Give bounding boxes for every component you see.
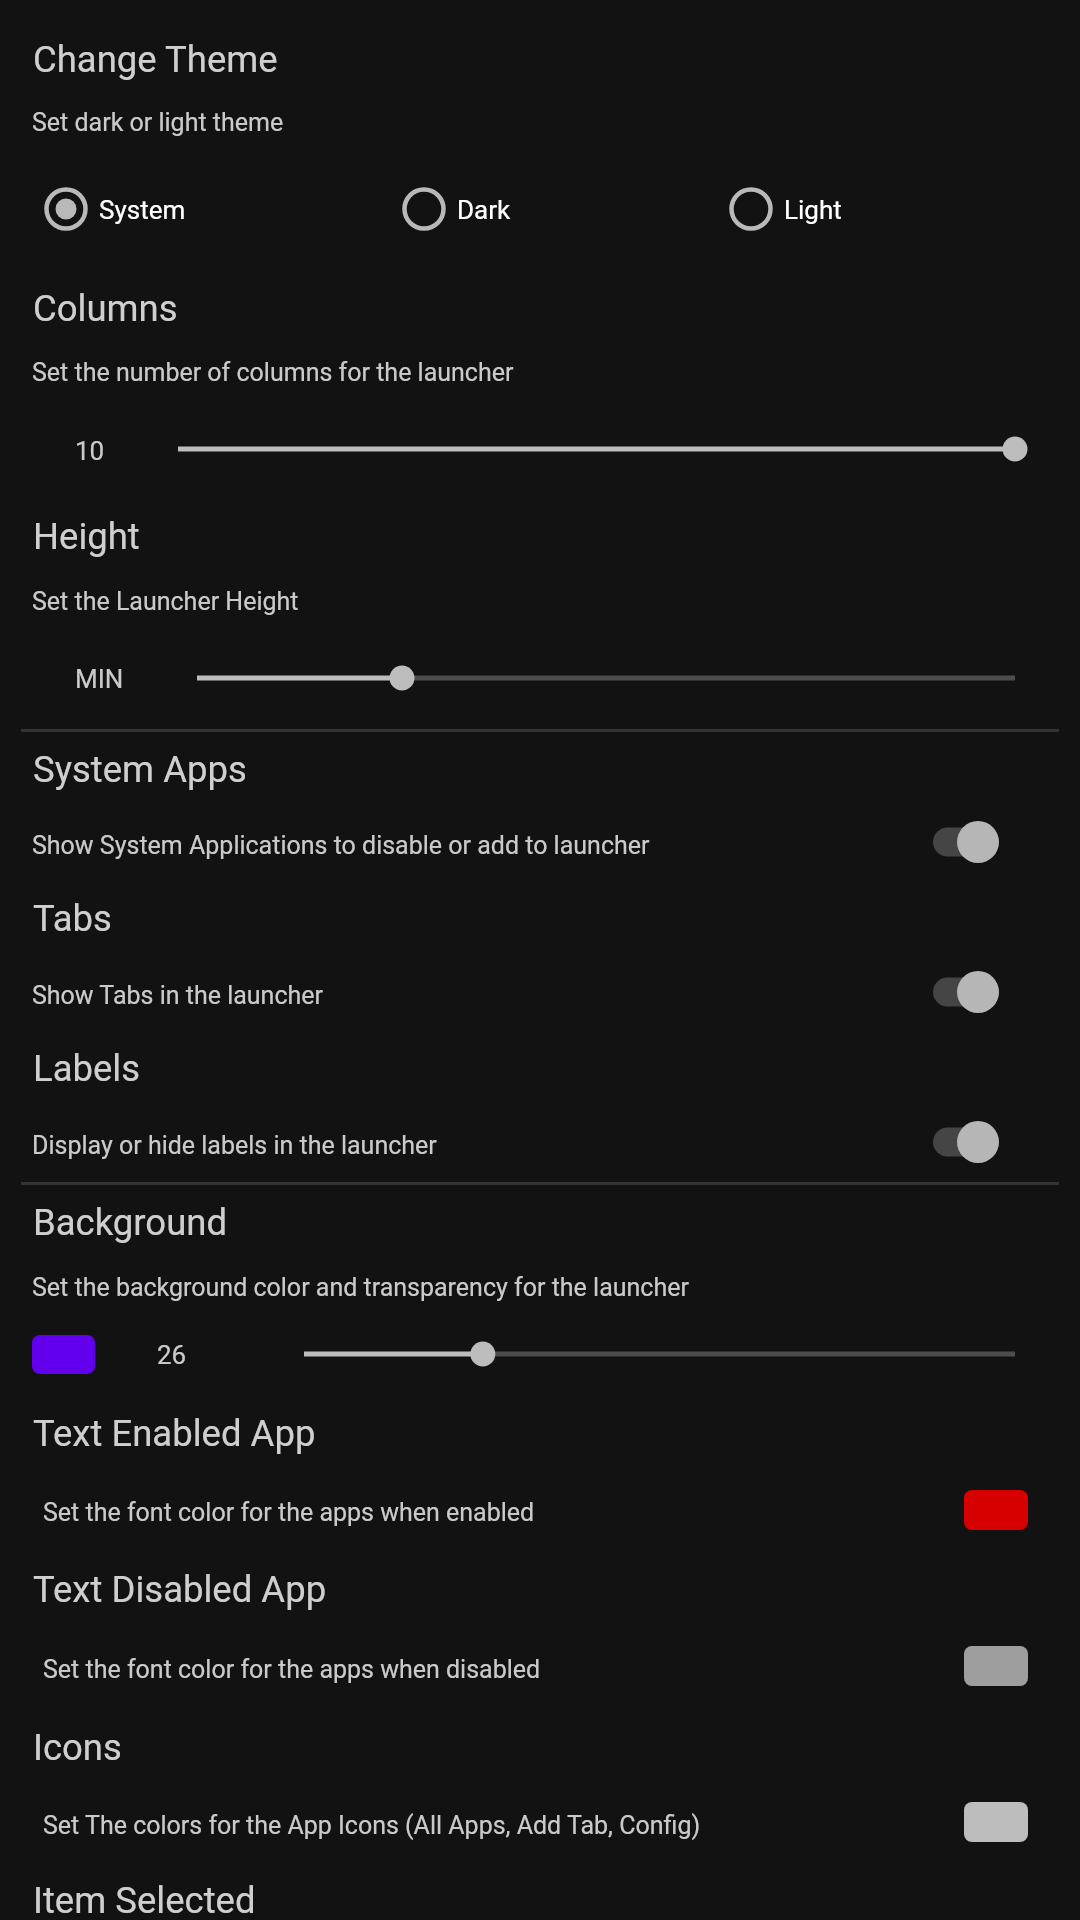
button[interactable]: App icon color [964, 1802, 1028, 1842]
staticText: Show Tabs in the launcher [32, 981, 323, 1010]
staticText: Labels [33, 1047, 141, 1090]
staticText: Light [784, 195, 842, 225]
staticText: Height [33, 515, 140, 558]
staticText: Set the font color for the apps when ena… [43, 1498, 535, 1527]
staticText: Text Disabled App [33, 1568, 327, 1611]
staticText: Set the number of columns for the launch… [32, 358, 514, 387]
staticText: Text Enabled App [33, 1412, 316, 1455]
button[interactable]: Enabled app text color [964, 1490, 1028, 1530]
staticText: Item Selected [33, 1879, 256, 1920]
staticText: Set dark or light theme [32, 108, 284, 137]
button[interactable]: System [40, 179, 189, 239]
button[interactable]: Light [725, 179, 848, 239]
button[interactable]: Display or hide labels [929, 1108, 1025, 1176]
button[interactable]: Background transparency [304, 1330, 1015, 1378]
button[interactable]: Show system applications [929, 808, 1025, 876]
button[interactable]: Show tabs in the launcher [929, 958, 1025, 1026]
button[interactable]: Background color [32, 1335, 95, 1374]
staticText: Change Theme [33, 38, 278, 81]
button[interactable]: Dark [398, 179, 517, 239]
staticText: Show System Applications to disable or a… [32, 831, 650, 860]
button[interactable]: Launcher height [197, 654, 1015, 702]
staticText: Display or hide labels in the launcher [32, 1131, 437, 1160]
button[interactable]: Disabled app text color [964, 1646, 1028, 1686]
staticText: Tabs [33, 897, 112, 940]
staticText: Dark [457, 195, 511, 225]
staticText: Set the background color and transparenc… [32, 1273, 689, 1302]
staticText: 10 [75, 436, 105, 466]
staticText: MIN [75, 664, 124, 694]
staticText: Set the font color for the apps when dis… [43, 1655, 541, 1684]
staticText: Background [33, 1201, 228, 1244]
staticText: Set the Launcher Height [32, 587, 299, 616]
button[interactable]: Number of columns [178, 425, 1015, 473]
staticText: System Apps [33, 748, 247, 791]
staticText: Set The colors for the App Icons (All Ap… [43, 1811, 701, 1840]
staticText: Columns [33, 287, 178, 330]
staticText: Icons [33, 1726, 122, 1769]
staticText: 26 [157, 1340, 187, 1370]
staticText: System [99, 195, 186, 225]
